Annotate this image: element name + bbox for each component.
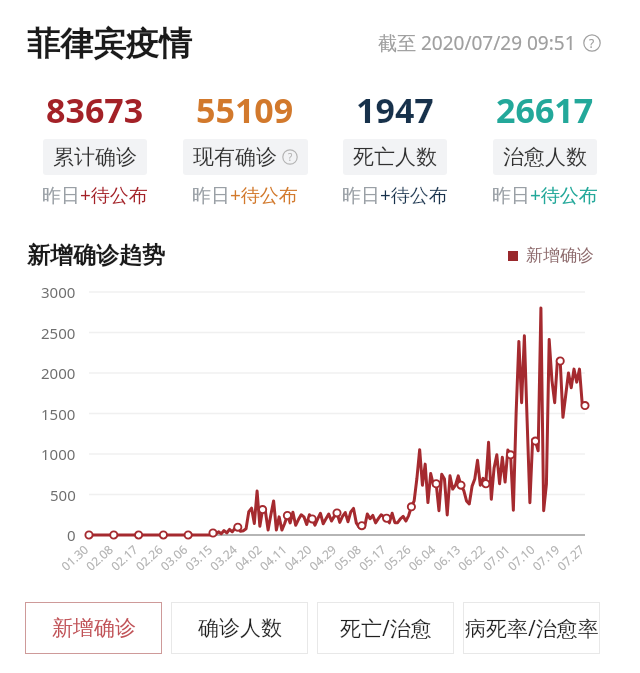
staticText: 昨日+待公布: [192, 182, 298, 208]
staticText: 截至 2020/07/29 09:51: [378, 30, 576, 56]
staticText: 昨日+待公布: [42, 182, 148, 208]
staticText: ?: [589, 35, 595, 51]
button[interactable]: 新增确诊趋势: [27, 241, 165, 270]
button[interactable]: 病死率/治愈率: [463, 602, 600, 654]
staticText: 83673: [46, 87, 144, 133]
staticText: 确诊人数: [198, 615, 282, 641]
button[interactable]: 1947: [320, 87, 470, 208]
staticText: ?: [288, 150, 293, 164]
staticText: 55109: [196, 87, 294, 133]
staticText: 死亡/治愈: [340, 614, 432, 643]
staticText: 1947: [356, 87, 434, 133]
button[interactable]: 26617: [470, 87, 620, 208]
staticText: 现有确诊: [193, 144, 277, 170]
button[interactable]: 确诊人数: [171, 602, 308, 654]
staticText: 新增确诊: [526, 245, 594, 266]
staticText: 治愈人数: [503, 144, 587, 170]
button[interactable]: 菲律宾疫情: [27, 23, 192, 65]
button[interactable]: 死亡/治愈: [317, 602, 454, 654]
staticText: 累计确诊: [53, 144, 137, 170]
button[interactable]: 83673: [20, 87, 170, 208]
staticText: 26617: [496, 87, 594, 133]
button[interactable]: 新增确诊: [508, 245, 594, 266]
staticText: 死亡人数: [353, 144, 437, 170]
button[interactable]: 55109: [170, 87, 320, 208]
button[interactable]: 截至 2020/07/29 09:51: [378, 30, 601, 56]
staticText: 新增确诊: [52, 615, 136, 641]
staticText: 昨日+待公布: [342, 182, 448, 208]
staticText: 病死率/治愈率: [465, 614, 599, 643]
staticText: 昨日+待公布: [492, 182, 598, 208]
button[interactable]: 新增确诊: [25, 602, 162, 654]
